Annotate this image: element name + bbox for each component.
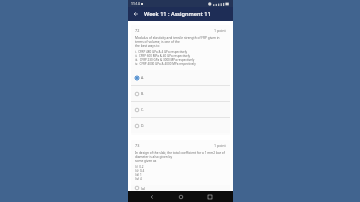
staticText: (iii) 1 [135, 173, 142, 177]
staticText: 11:14 [131, 1, 140, 6]
button[interactable]: A. [131, 70, 230, 85]
staticText: C. [141, 107, 145, 112]
staticText: i. CFRP 480 GPa & 4 GPa respectively [135, 50, 188, 54]
button[interactable]: B. [131, 86, 230, 101]
staticText: 1 point [214, 143, 226, 148]
staticText: 73 [135, 143, 140, 148]
staticText: D. [141, 123, 145, 128]
staticText: In design of the slab, the total coeffic… [135, 151, 226, 159]
button[interactable]: Recent apps [204, 191, 215, 202]
button[interactable]: (a) [131, 185, 230, 191]
staticText: A. [141, 75, 145, 80]
staticText: (i) 0.2 [135, 165, 144, 169]
staticText: (iv) 4 [135, 177, 142, 181]
staticText: iv. CFRP 4000 GPa & 4000 MPa respectivel… [135, 62, 196, 66]
button[interactable]: Back [131, 9, 141, 19]
staticText: B. [141, 91, 145, 96]
button[interactable]: D. [131, 118, 230, 133]
button[interactable]: Back [146, 191, 157, 202]
staticText: iii. CFRP 230 GPa & 3000 MPa respectivel… [135, 58, 195, 62]
staticText: the best ways to [135, 44, 160, 48]
button[interactable]: Home [175, 191, 186, 202]
staticText: (a) [141, 186, 145, 191]
staticText: Modulus of elasticity and tensile streng… [135, 36, 226, 44]
staticText: 1 point [214, 28, 226, 33]
staticText: (ii) 0.4 [135, 169, 145, 173]
staticText: ii. CFRP 600 MPa & 40 GPa respectively [135, 54, 191, 58]
button[interactable]: C. [131, 102, 230, 117]
staticText: some given as [135, 159, 157, 163]
staticText: Week 11 : Assignment 11 [144, 10, 211, 18]
staticText: 72 [135, 28, 140, 33]
